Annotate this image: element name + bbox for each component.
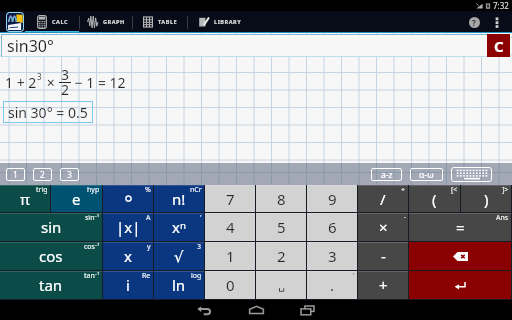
button[interactable]: Help <box>463 11 485 33</box>
staticText: ÷ <box>401 185 406 195</box>
button[interactable]: n! <box>154 185 205 213</box>
button[interactable]: e <box>51 185 103 213</box>
staticText: log <box>191 271 202 281</box>
staticText: xⁿ <box>172 217 186 237</box>
staticText: ? <box>472 17 476 28</box>
staticText: Re <box>142 271 151 281</box>
button[interactable]: CALC <box>25 11 79 33</box>
button[interactable]: ln <box>154 271 205 300</box>
button[interactable]: GRAPH <box>80 11 132 33</box>
staticText: ␣ <box>278 279 285 292</box>
staticText: × <box>43 73 59 92</box>
button[interactable]: i <box>103 271 154 300</box>
staticText: 7:32 <box>493 0 509 11</box>
button[interactable]: + <box>358 271 409 300</box>
button[interactable]: 5 <box>256 213 307 242</box>
staticText: 2 <box>277 246 286 266</box>
staticText: x <box>124 246 132 266</box>
button[interactable]: TABLE <box>133 11 187 33</box>
staticText: LIBRARY <box>214 18 242 26</box>
button[interactable]: sin30° <box>2 35 487 57</box>
staticText: trig <box>36 185 48 195</box>
staticText: 2 <box>40 169 45 181</box>
staticText: tan <box>39 275 63 295</box>
staticText: 6 <box>328 217 337 237</box>
staticText: π <box>20 189 30 209</box>
button[interactable]: ( <box>409 185 461 213</box>
button[interactable]: 6 <box>307 213 358 242</box>
button[interactable]: Keyboard <box>451 167 492 182</box>
button[interactable]: Recent apps <box>285 300 329 320</box>
button[interactable]: cos <box>0 242 103 271</box>
staticText: a-z <box>381 169 393 181</box>
button[interactable]: a-z <box>371 168 402 181</box>
button[interactable]: More options <box>486 11 508 33</box>
button[interactable]: = <box>409 213 512 242</box>
staticText: ) <box>484 189 489 209</box>
button[interactable]: 1 <box>6 168 25 181</box>
button[interactable]: App logo <box>7 13 23 31</box>
staticText: 8 <box>277 189 286 209</box>
button[interactable]: % <box>103 185 154 213</box>
button[interactable]: 0 <box>205 271 256 300</box>
button[interactable]: sin <box>0 213 103 242</box>
button[interactable]: xⁿ <box>154 213 205 242</box>
staticText: / <box>380 189 386 209</box>
staticText: 3 <box>67 169 72 181</box>
staticText: α-ω <box>419 169 434 181</box>
button[interactable]: 3 <box>60 168 79 181</box>
button[interactable]: / <box>358 185 409 213</box>
button[interactable]: - <box>358 242 409 271</box>
button[interactable]: α-ω <box>410 168 443 181</box>
staticText: i <box>126 275 130 295</box>
staticText: cos <box>39 246 63 266</box>
button[interactable]: 7 <box>205 185 256 213</box>
button[interactable]: 3 <box>307 242 358 271</box>
staticText: hyp <box>87 185 100 195</box>
staticText: cos⁻¹ <box>84 242 100 252</box>
staticText: 3 <box>37 71 42 82</box>
button[interactable]: Home <box>234 300 278 320</box>
button[interactable]: Back <box>182 300 226 320</box>
staticText: 3 <box>61 65 70 84</box>
staticText: · <box>404 213 406 223</box>
staticText: 2 <box>61 80 70 99</box>
button[interactable]: . <box>307 271 358 300</box>
button[interactable]: 9 <box>307 185 358 213</box>
staticText: sin 30° = 0.5 <box>8 103 88 122</box>
staticText: 7 <box>226 189 235 209</box>
button[interactable]: C <box>487 34 510 57</box>
staticText: 4 <box>226 217 235 237</box>
button[interactable]: 1 <box>205 242 256 271</box>
staticText: 9 <box>328 189 337 209</box>
button[interactable]: 8 <box>256 185 307 213</box>
staticText: ( <box>432 189 437 209</box>
button[interactable]: × <box>358 213 409 242</box>
button[interactable]: π <box>0 185 51 213</box>
staticText: GRAPH <box>103 18 125 26</box>
button[interactable]: ␣ <box>256 271 307 300</box>
button[interactable]: |x| <box>103 213 154 242</box>
staticText: tan⁻¹ <box>84 271 100 281</box>
button[interactable]: √ <box>154 242 205 271</box>
staticText: 1 + 2 <box>5 73 37 92</box>
button[interactable]: Enter <box>409 271 512 300</box>
staticText: 1 <box>226 246 235 266</box>
button[interactable]: 2 <box>256 242 307 271</box>
button[interactable]: sin 30° = 0.5 <box>8 101 88 123</box>
button[interactable]: tan <box>0 271 103 300</box>
staticText: - <box>381 246 386 266</box>
staticText: C <box>494 36 504 56</box>
button[interactable]: ) <box>461 185 512 213</box>
staticText: % <box>145 185 151 195</box>
staticText: |x| <box>116 217 141 237</box>
staticText: Ans <box>496 213 509 223</box>
button[interactable]: 2 <box>33 168 52 181</box>
button[interactable]: x <box>103 242 154 271</box>
staticText: n! <box>172 189 186 209</box>
staticText: nCr <box>190 185 202 195</box>
staticText: ' <box>353 271 355 281</box>
button[interactable]: 4 <box>205 213 256 242</box>
button[interactable]: Backspace <box>409 242 512 271</box>
button[interactable]: LIBRARY <box>188 11 252 33</box>
